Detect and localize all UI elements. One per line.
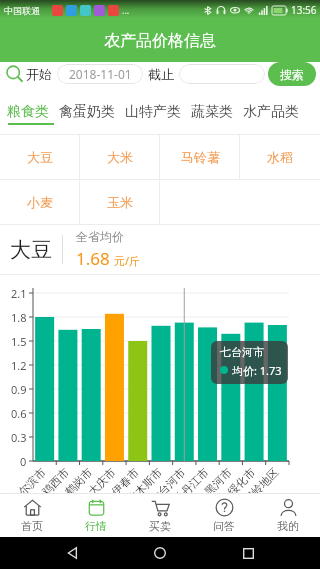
staticText: 大米 [107,149,133,165]
button[interactable]: Back [58,538,88,568]
button[interactable]: 禽蛋奶类 [59,103,115,121]
staticText: 全省均价 [76,229,124,244]
button[interactable]: 首页 [0,494,64,537]
button[interactable]: 玉米 [80,180,160,224]
staticText: 粮食类 [7,103,49,121]
other: Search [6,65,24,83]
button[interactable]: 买卖 [128,494,192,537]
button[interactable]: 2018-11-01 [57,64,143,84]
staticText: 2018-11-01 [69,66,132,82]
button[interactable]: 蔬菜类 [191,103,233,121]
staticText: 行情 [85,519,107,533]
staticText: 13:56 [291,3,317,17]
staticText: 马铃薯 [181,149,220,165]
staticText: 大豆 [27,149,53,165]
staticText: 玉米 [107,194,133,210]
staticText: 元/斤 [114,253,141,268]
button[interactable]: 问答 [192,494,256,537]
staticText: 首页 [21,519,43,533]
staticText: 中国联通 [4,5,40,16]
button[interactable]: Recents [233,538,263,568]
button[interactable]: 小麦 [0,180,80,224]
staticText: 山特产类 [125,103,181,121]
staticText: 蔬菜类 [191,103,233,121]
button[interactable]: 水稻 [240,135,320,179]
button[interactable]: 搜索 [268,62,316,86]
button[interactable]: 粮食类 [7,103,49,121]
staticText: 问答 [213,519,235,533]
button[interactable]: 大豆 [0,135,80,179]
staticText: 1.68 [76,247,110,270]
staticText: 搜索 [280,67,304,82]
staticText: 农产品价格信息 [104,31,216,51]
button[interactable]: 大米 [80,135,160,179]
staticText: 开始 [26,66,52,82]
staticText: 水产品类 [243,103,299,121]
staticText: 买卖 [149,519,171,533]
button[interactable]: 马铃薯 [160,135,240,179]
staticText: 小麦 [27,194,53,210]
staticText: 禽蛋奶类 [59,103,115,121]
button[interactable] [179,64,265,84]
button[interactable]: 行情 [64,494,128,537]
button[interactable]: 山特产类 [125,103,181,121]
staticText: ... [122,4,130,16]
staticText: 大豆 [10,237,52,263]
button[interactable]: Home [145,538,175,568]
button[interactable]: 我的 [256,494,320,537]
staticText: 截止 [148,66,174,82]
button[interactable]: 水产品类 [243,103,299,121]
staticText: 水稻 [267,149,293,165]
staticText: 我的 [277,519,299,533]
